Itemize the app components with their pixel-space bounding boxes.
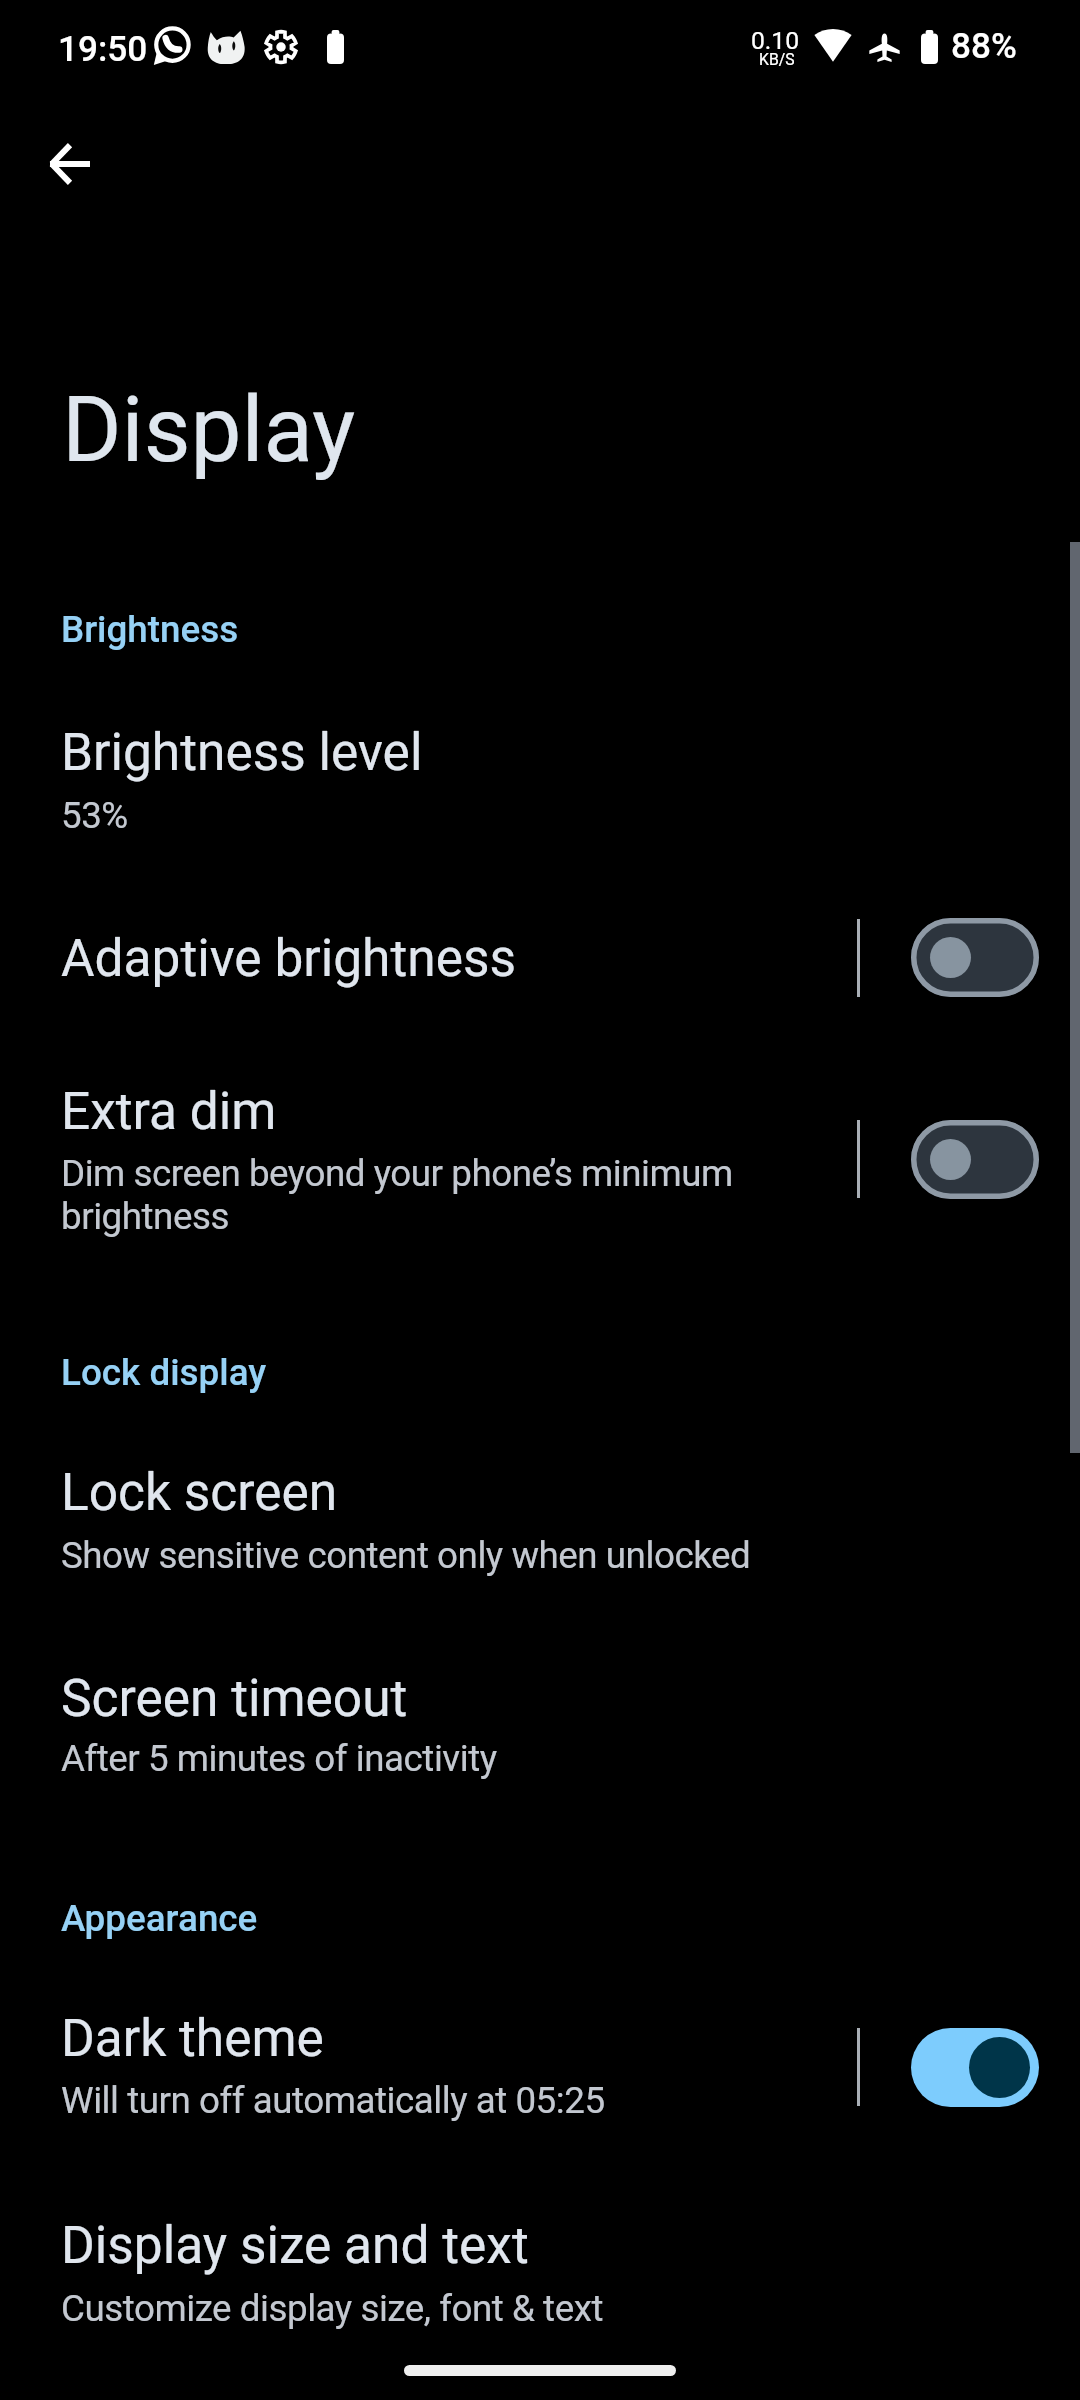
- staticText: After 5 minutes of inactivity: [61, 1737, 497, 1780]
- staticText: Appearance: [61, 1897, 258, 1940]
- button[interactable]: Appearance: [0, 1867, 1080, 1963]
- button[interactable]: Screen timeout: [0, 1636, 1080, 1812]
- button[interactable]: Extra dim: [0, 1050, 857, 1262]
- button[interactable]: Lock display: [0, 1320, 1080, 1416]
- staticText: Brightness: [61, 608, 239, 651]
- staticText: Lock display: [61, 1351, 267, 1394]
- staticText: 88%: [951, 25, 1017, 66]
- staticText: 0.10: [751, 26, 800, 55]
- button[interactable]: Adaptive brightness: [0, 880, 857, 1036]
- staticText: 19:50: [58, 28, 148, 69]
- button[interactable]: Navigate up: [7, 101, 133, 227]
- staticText: Display size and text: [61, 2215, 529, 2275]
- staticText: Customize display size, font & text: [61, 2287, 603, 2330]
- staticText: Show sensitive content only when unlocke…: [61, 1534, 751, 1577]
- button[interactable]: Brightness level: [0, 690, 1080, 866]
- staticText: Brightness level: [61, 722, 423, 782]
- staticText: Will turn off automatically at 05:25: [61, 2079, 605, 2122]
- button[interactable]: Brightness: [0, 578, 1080, 674]
- button[interactable]: Lock screen: [0, 1430, 1080, 1606]
- button[interactable]: Dark theme: [0, 1976, 857, 2152]
- staticText: Screen timeout: [61, 1668, 408, 1728]
- staticText: Display: [62, 377, 356, 483]
- button[interactable]: Extra dim toggle: [873, 1103, 1077, 1215]
- button[interactable]: Dark theme toggle: [873, 2011, 1077, 2123]
- button[interactable]: Display size and text: [0, 2183, 1080, 2355]
- staticText: Adaptive brightness: [61, 928, 517, 988]
- staticText: Dim screen beyond your phone’s minimum b…: [61, 1152, 801, 1238]
- button[interactable]: Adaptive brightness toggle: [873, 901, 1077, 1013]
- staticText: Extra dim: [61, 1081, 277, 1141]
- staticText: Dark theme: [61, 2008, 324, 2068]
- staticText: 53%: [61, 794, 128, 837]
- staticText: Lock screen: [61, 1462, 338, 1522]
- staticText: KB/S: [759, 50, 795, 68]
